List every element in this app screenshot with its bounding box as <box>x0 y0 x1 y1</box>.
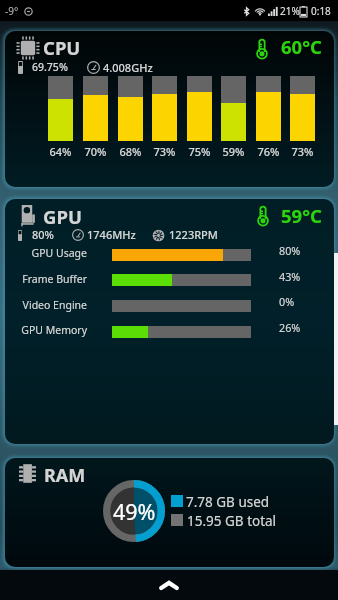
button[interactable]: Expand panel <box>0 570 338 600</box>
staticText: 43% <box>279 269 301 284</box>
staticText: 1746MHz <box>87 227 136 242</box>
staticText: 15.95 GB total <box>187 512 277 530</box>
staticText: 59°C <box>281 203 322 228</box>
staticText: 75% <box>179 144 220 159</box>
staticText: 7.78 GB used <box>186 493 270 511</box>
staticText: 69.75% <box>32 60 68 74</box>
staticText: 1223RPM <box>169 227 218 242</box>
staticText: 73% <box>282 144 323 159</box>
staticText: 0% <box>279 294 295 309</box>
staticText: -9° <box>5 4 19 18</box>
staticText: 80% <box>279 243 301 258</box>
staticText: 64% <box>40 144 81 159</box>
staticText: 4.008GHz <box>103 60 153 75</box>
staticText: 73% <box>144 144 185 159</box>
staticText: CPU <box>43 35 81 60</box>
staticText: 76% <box>248 144 289 159</box>
staticText: Video Engine <box>5 298 87 312</box>
staticText: Frame Buffer <box>5 272 87 286</box>
staticText: GPU Memory <box>5 323 87 337</box>
staticText: RAM <box>44 463 86 488</box>
staticText: 68% <box>110 144 151 159</box>
staticText: 80% <box>32 227 54 242</box>
staticText: GPU <box>43 204 82 229</box>
staticText: 70% <box>75 144 116 159</box>
staticText: 0:18 <box>311 4 331 18</box>
staticText: 26% <box>279 320 301 335</box>
staticText: 49% <box>113 497 156 526</box>
staticText: 60°C <box>281 34 322 59</box>
staticText: GPU Usage <box>5 246 87 260</box>
staticText: 59% <box>213 144 254 159</box>
staticText: 21% <box>280 4 300 18</box>
